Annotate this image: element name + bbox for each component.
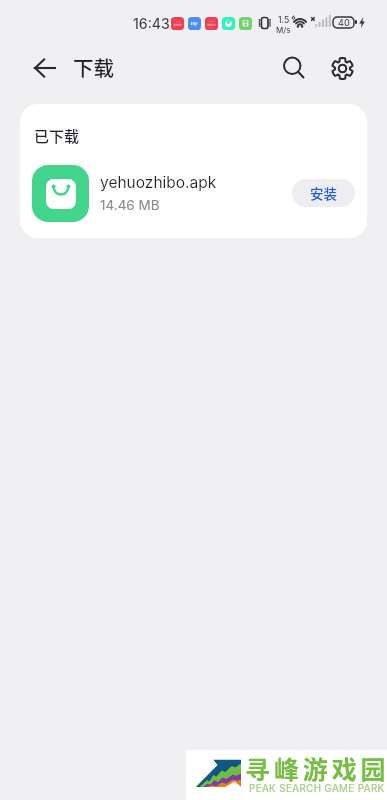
staticText: yehuozhibo.apk — [100, 173, 217, 192]
button[interactable]: Back — [20, 44, 68, 92]
staticText: 1.5 — [278, 15, 290, 25]
button[interactable]: 安装 — [292, 179, 355, 207]
staticText: 寻峰游戏园 — [245, 750, 387, 786]
staticText: 安装 — [310, 183, 337, 203]
button[interactable]: Search — [272, 46, 316, 90]
button[interactable]: yehuozhibo.apk — [20, 160, 367, 226]
staticText: 40 — [338, 17, 350, 28]
staticText: 下载 — [73, 52, 114, 82]
staticText: 16:43 — [133, 15, 170, 32]
staticText: PEAK SEARCH GAME PARK — [249, 783, 385, 795]
staticText: M/s — [276, 25, 291, 35]
staticText: 14.46 MB — [100, 197, 160, 213]
staticText: 已下载 — [34, 125, 80, 147]
button[interactable]: Settings — [320, 46, 365, 91]
